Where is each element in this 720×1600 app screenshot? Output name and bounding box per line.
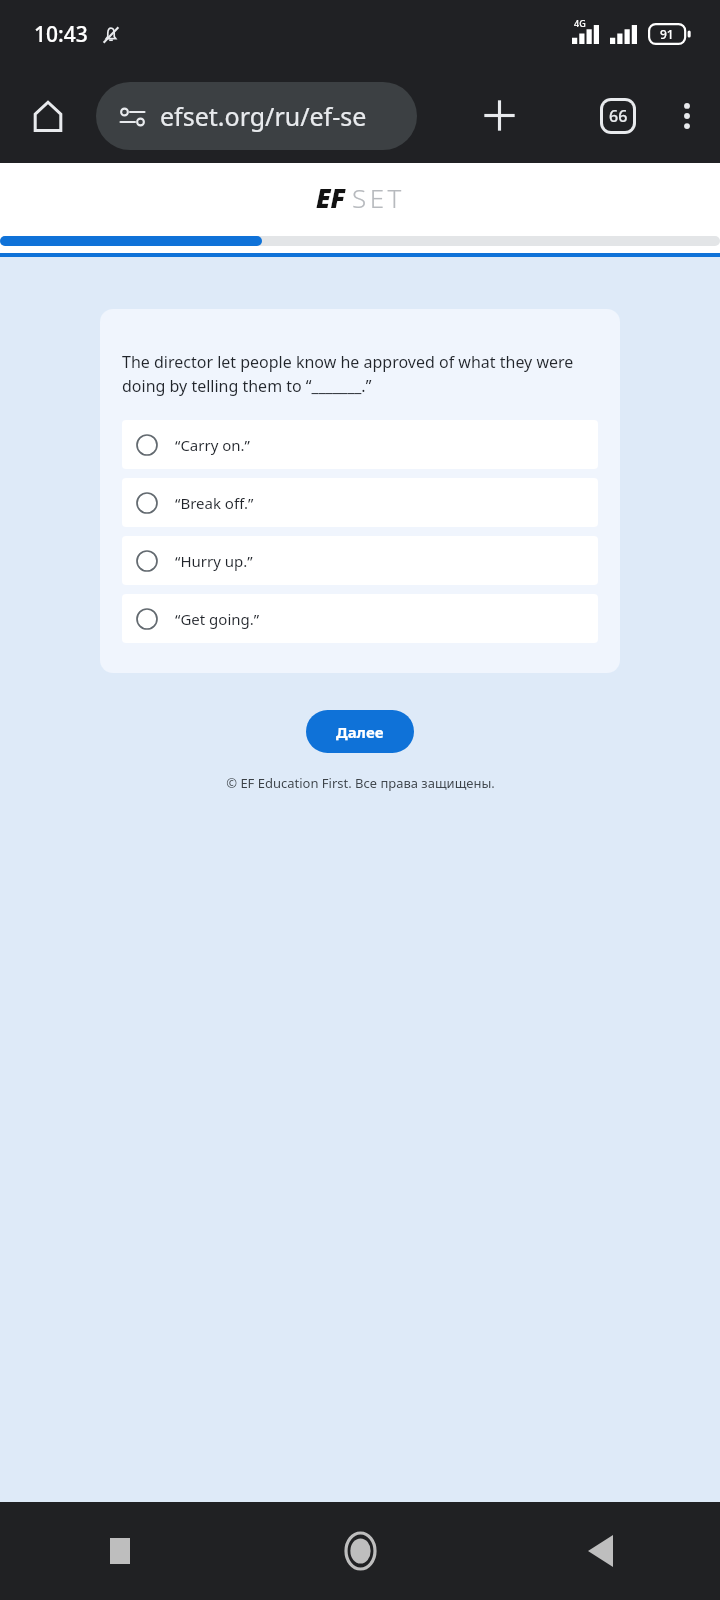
button[interactable]: Home: [240, 1502, 480, 1600]
staticText: 91: [660, 26, 674, 42]
staticText: “Break off.”: [175, 493, 254, 513]
staticText: “Carry on.”: [175, 435, 250, 455]
button[interactable]: “Carry on.”: [122, 420, 598, 469]
button[interactable]: Switch tabs, 66 open: [582, 68, 654, 163]
staticText: efset.org/ru/ef-se: [160, 99, 367, 133]
staticText: 10:43: [34, 20, 88, 49]
staticText: Далее: [336, 722, 384, 742]
button[interactable]: efset.org/ru/ef-se: [96, 82, 417, 150]
button[interactable]: “Break off.”: [122, 478, 598, 527]
button[interactable]: More options: [654, 68, 720, 163]
staticText: SET: [352, 180, 405, 215]
staticText: “Hurry up.”: [175, 551, 253, 571]
button[interactable]: Home: [0, 68, 96, 163]
button[interactable]: “Hurry up.”: [122, 536, 598, 585]
button[interactable]: Back: [480, 1502, 720, 1600]
staticText: 4G: [574, 17, 586, 29]
button[interactable]: New tab: [417, 68, 582, 163]
staticText: “Get going.”: [175, 609, 260, 629]
staticText: EF: [316, 180, 346, 215]
button[interactable]: Recent apps: [0, 1502, 240, 1600]
staticText: 66: [609, 105, 628, 127]
staticText: © EF Education First. Все права защищены…: [226, 774, 495, 792]
button[interactable]: “Get going.”: [122, 594, 598, 643]
button[interactable]: Далее: [306, 710, 414, 753]
staticText: The director let people know he approved…: [122, 351, 598, 397]
